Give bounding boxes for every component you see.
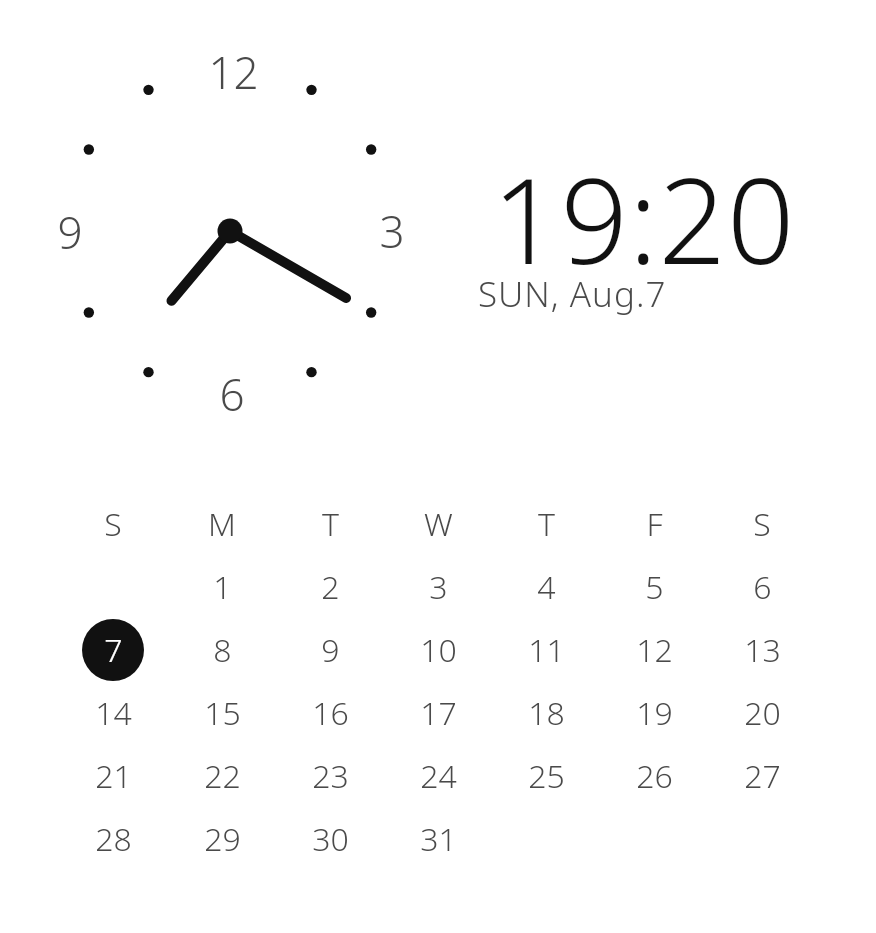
button[interactable]: 2 [299, 556, 361, 618]
button[interactable]: 12 [623, 619, 685, 681]
staticText: 19:20 [492, 138, 796, 299]
button[interactable]: 23 [299, 745, 361, 807]
staticText: W [424, 502, 453, 546]
button[interactable]: F [623, 493, 685, 555]
button[interactable]: 15 [191, 682, 253, 744]
staticText: 6 [219, 364, 245, 420]
staticText: 20 [744, 691, 781, 735]
button[interactable]: 13 [731, 619, 793, 681]
button[interactable]: 21 [82, 745, 144, 807]
button[interactable]: 22 [191, 745, 253, 807]
button[interactable]: 28 [82, 808, 144, 870]
button[interactable]: S [731, 493, 793, 555]
staticText: 15 [204, 691, 241, 735]
staticText: 26 [636, 754, 673, 798]
button[interactable]: 5 [623, 556, 685, 618]
staticText: 4 [537, 565, 556, 609]
staticText: 3 [429, 565, 448, 609]
staticText: T [538, 502, 555, 546]
staticText: 28 [95, 817, 132, 861]
button[interactable]: 3 [407, 556, 469, 618]
button[interactable]: 9 [299, 619, 361, 681]
staticText: 8 [213, 628, 232, 672]
button[interactable]: Analog clock showing 7:20 [40, 40, 420, 422]
button[interactable]: T [515, 493, 577, 555]
staticText: T [322, 502, 339, 546]
button[interactable]: 11 [515, 619, 577, 681]
button[interactable]: 27 [731, 745, 793, 807]
button[interactable]: T [299, 493, 361, 555]
button[interactable]: 25 [515, 745, 577, 807]
staticText: 29 [204, 817, 241, 861]
staticText: 10 [420, 628, 457, 672]
button[interactable]: 8 [191, 619, 253, 681]
staticText: 1 [213, 565, 232, 609]
button[interactable]: 7 [82, 619, 144, 681]
button[interactable]: 14 [82, 682, 144, 744]
staticText: 27 [744, 754, 781, 798]
button[interactable]: 19 [623, 682, 685, 744]
staticText: F [646, 502, 663, 546]
button[interactable]: 19:20 [478, 138, 828, 318]
button[interactable]: 20 [731, 682, 793, 744]
staticText: 3 [379, 201, 405, 257]
button[interactable]: 16 [299, 682, 361, 744]
staticText: 23 [312, 754, 349, 798]
staticText: S [104, 502, 122, 546]
button[interactable]: 26 [623, 745, 685, 807]
staticText: 12 [636, 628, 673, 672]
staticText: 9 [57, 202, 83, 258]
staticText: 16 [312, 691, 349, 735]
staticText: 21 [95, 754, 132, 798]
staticText: 17 [420, 691, 457, 735]
staticText: M [208, 502, 236, 546]
staticText: 13 [744, 628, 781, 672]
staticText: 18 [528, 691, 565, 735]
button[interactable]: 4 [515, 556, 577, 618]
button[interactable]: 10 [407, 619, 469, 681]
button[interactable]: 30 [299, 808, 361, 870]
staticText: 5 [645, 565, 664, 609]
staticText: 24 [420, 754, 457, 798]
staticText: 6 [753, 565, 772, 609]
staticText: 12 [208, 42, 259, 98]
button[interactable]: 18 [515, 682, 577, 744]
staticText: S [753, 502, 771, 546]
staticText: 22 [204, 754, 241, 798]
button[interactable]: 24 [407, 745, 469, 807]
staticText: 2 [321, 565, 340, 609]
button[interactable]: W [407, 493, 469, 555]
staticText: 30 [312, 817, 349, 861]
staticText: 7 [104, 628, 123, 672]
button[interactable]: 17 [407, 682, 469, 744]
staticText: 19 [636, 691, 673, 735]
button[interactable]: 1 [191, 556, 253, 618]
button[interactable]: M [191, 493, 253, 555]
staticText: SUN, Aug.7 [478, 270, 667, 318]
staticText: 25 [528, 754, 565, 798]
staticText: 31 [420, 817, 457, 861]
button[interactable]: 6 [731, 556, 793, 618]
staticText: 9 [321, 628, 340, 672]
staticText: 11 [528, 628, 565, 672]
staticText: 14 [95, 691, 132, 735]
button[interactable]: 31 [407, 808, 469, 870]
button[interactable]: S [82, 493, 144, 555]
button[interactable]: 29 [191, 808, 253, 870]
